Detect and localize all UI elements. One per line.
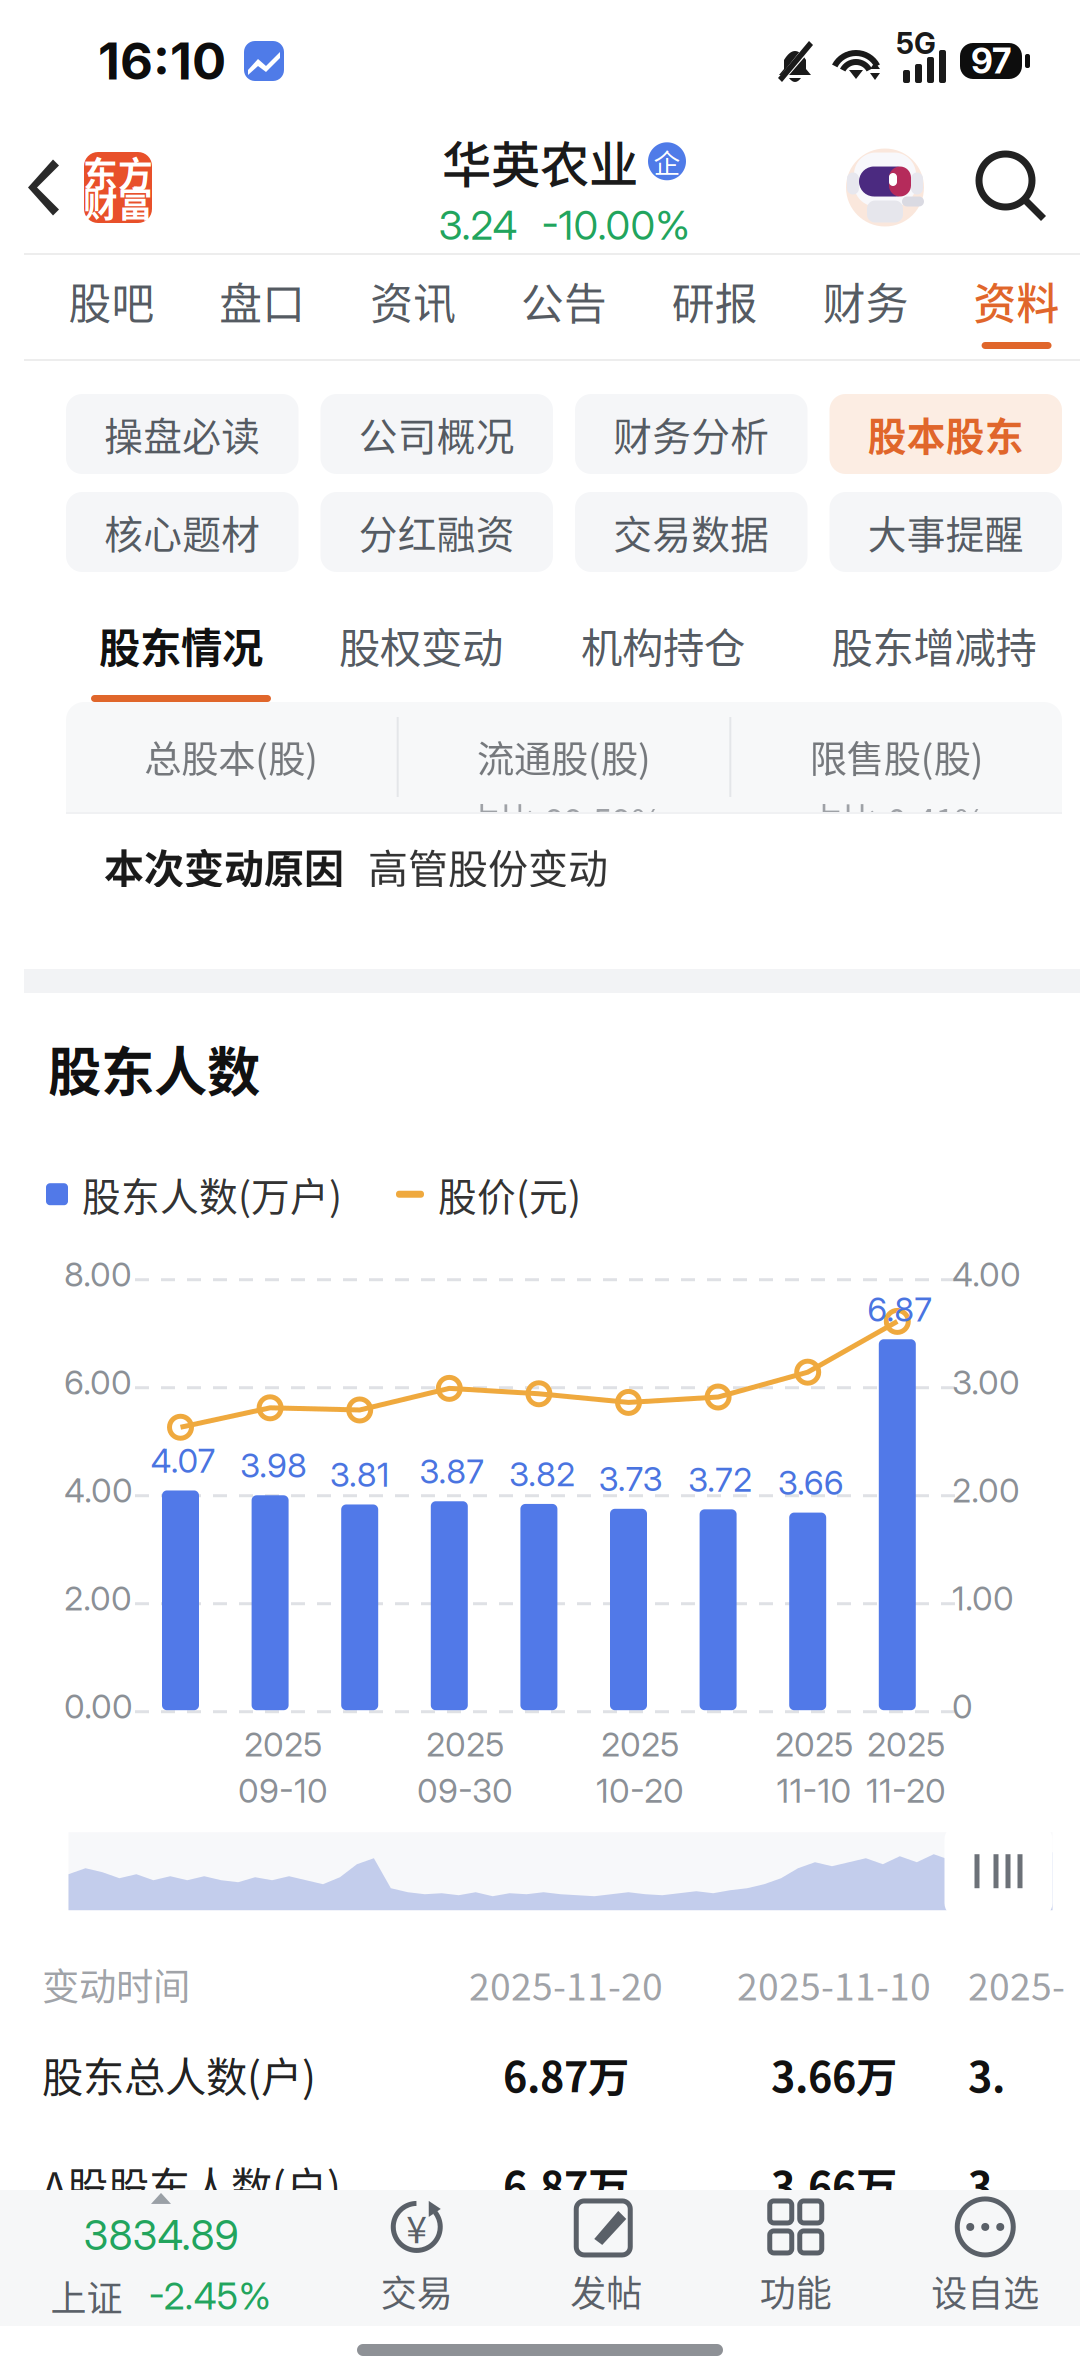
staticText: 设自选 <box>931 2265 1039 2317</box>
staticText: 流通股(股) <box>477 730 651 784</box>
staticText: 总股本(股) <box>144 730 318 784</box>
staticText: 3.98 <box>240 1445 307 1486</box>
staticText: 变动时间 <box>42 1957 190 2011</box>
staticText: 本次变动原因 <box>104 837 344 895</box>
staticText: 1.00 <box>952 1578 1014 1618</box>
staticText: 16:10 <box>98 30 226 92</box>
staticText: 3.66万 <box>771 2044 897 2104</box>
button[interactable]: 盘口 <box>187 255 338 359</box>
staticText: 3.81 <box>330 1454 390 1495</box>
button[interactable]: 公司概况 <box>320 394 553 474</box>
button[interactable]: 资料 <box>941 255 1080 359</box>
button[interactable]: 公告 <box>489 255 639 359</box>
button[interactable]: 发帖 <box>511 2195 701 2317</box>
staticText: 股东情况 <box>99 615 263 675</box>
button[interactable]: 智能助手 <box>843 132 927 242</box>
staticText: 3.82 <box>509 1454 575 1494</box>
staticText: 限售股(股) <box>810 730 984 784</box>
staticText: 上证 <box>50 2270 122 2322</box>
staticText: 3. <box>968 2154 1005 2214</box>
staticText: 占比:0.41% <box>807 794 986 844</box>
button[interactable]: 东方财富 <box>84 132 152 242</box>
staticText: ¥ <box>406 2200 427 2254</box>
button[interactable]: 股本股东 <box>829 394 1062 474</box>
staticText: 4.00 <box>64 1470 133 1510</box>
staticText: 4.00 <box>952 1254 1021 1294</box>
staticText: 核心题材 <box>104 504 260 560</box>
staticText: 分红融资 <box>359 504 515 560</box>
staticText: 高管股份变动 <box>368 837 608 895</box>
staticText: 资讯 <box>370 270 456 332</box>
staticText: 0 <box>952 1686 973 1726</box>
staticText: 11-10 <box>776 1770 851 1811</box>
staticText: 6.00 <box>64 1362 132 1402</box>
staticText: 4.07 <box>150 1440 215 1481</box>
staticText: 3.66万 <box>771 2154 897 2214</box>
staticText: 3.72 <box>688 1459 752 1500</box>
staticText: 发帖 <box>570 2265 642 2317</box>
staticText: 2025-11-10 <box>737 1957 931 2011</box>
staticText: 盘口 <box>219 270 305 332</box>
staticText: 6.87 <box>867 1289 932 1329</box>
staticText: 2.00 <box>64 1578 132 1618</box>
button[interactable]: 股东增减持 <box>784 600 1080 702</box>
staticText: 资料 <box>974 270 1060 332</box>
staticText: 2025 <box>426 1724 504 1764</box>
staticText: 10-20 <box>596 1770 684 1811</box>
staticText: 3.00 <box>952 1362 1020 1402</box>
button[interactable]: 股东情况 <box>62 600 300 702</box>
staticText: 09-30 <box>417 1770 513 1811</box>
button[interactable]: 股权变动 <box>300 600 542 702</box>
button[interactable]: 财务 <box>790 255 941 359</box>
staticText: 华英农业 <box>442 126 638 197</box>
button[interactable]: 大事提醒 <box>829 492 1062 572</box>
staticText: 3.73 <box>598 1459 662 1499</box>
staticText: 3.24 <box>438 201 517 249</box>
staticText: 股东人数(万户) <box>82 1166 342 1222</box>
staticText: 股权变动 <box>339 615 503 675</box>
staticText: 公告 <box>521 270 607 332</box>
staticText: 占比:99.59% <box>465 794 663 844</box>
staticText: 操盘必读 <box>104 406 260 462</box>
staticText: 09-10 <box>238 1770 328 1811</box>
button[interactable]: 搜索 <box>979 132 1046 242</box>
staticText: 财务分析 <box>613 406 769 462</box>
staticText: 研报 <box>672 270 758 332</box>
button[interactable]: 交易数据 <box>575 492 807 572</box>
button[interactable]: 操盘必读 <box>66 394 298 474</box>
staticText: 股价(元) <box>438 1166 581 1222</box>
button[interactable]: 股吧 <box>36 255 187 359</box>
staticText: 股东增减持 <box>831 615 1036 675</box>
staticText: 公司概况 <box>359 406 515 462</box>
staticText: 交易数据 <box>613 504 769 560</box>
staticText <box>227 794 235 844</box>
button[interactable]: 研报 <box>639 255 790 359</box>
staticText: 2025-11-20 <box>469 1957 663 2011</box>
button[interactable]: 财务分析 <box>575 394 807 474</box>
staticText: 大事提醒 <box>868 504 1024 560</box>
button[interactable]: 3834.89 <box>0 2190 322 2322</box>
staticText: 2025 <box>867 1724 945 1764</box>
button[interactable]: 返回 <box>28 132 59 242</box>
staticText: 财富 <box>83 177 153 228</box>
button[interactable]: 设自选 <box>890 2195 1080 2317</box>
staticText: 股东人数 <box>48 1030 260 1107</box>
staticText: 东方 <box>83 147 153 198</box>
staticText: 5G <box>896 25 936 61</box>
button[interactable]: 分红融资 <box>320 492 553 572</box>
staticText: 3834.89 <box>83 2210 238 2260</box>
button[interactable]: 资讯 <box>338 255 489 359</box>
staticText: -2.45% <box>148 2273 271 2319</box>
staticText: 8.00 <box>64 1254 132 1294</box>
staticText: 功能 <box>760 2265 832 2317</box>
staticText: 2025 <box>244 1724 322 1764</box>
staticText: 6.87万 <box>503 2154 629 2214</box>
staticText: -10.00% <box>541 201 689 249</box>
button[interactable]: 机构持仓 <box>542 600 784 702</box>
staticText: 机构持仓 <box>581 615 745 675</box>
staticText: 11-20 <box>866 1770 946 1811</box>
button[interactable]: ¥ <box>322 2195 511 2317</box>
staticText: 2025- <box>968 1957 1065 2011</box>
button[interactable]: 功能 <box>701 2195 890 2317</box>
button[interactable]: 核心题材 <box>66 492 298 572</box>
